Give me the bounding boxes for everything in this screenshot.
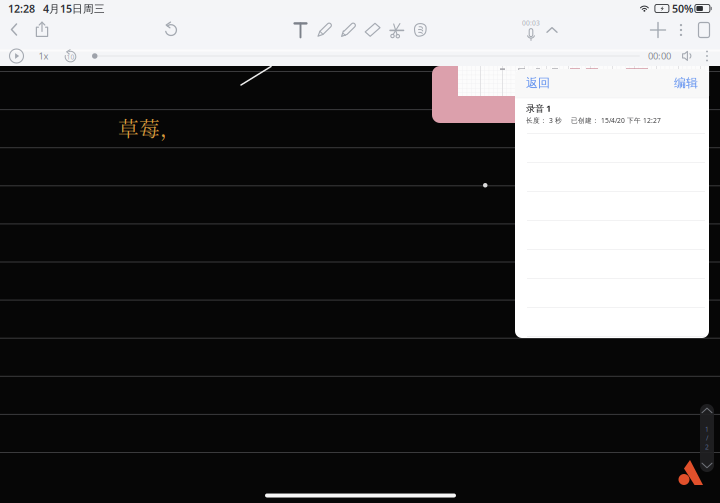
staticText: 2 [705,442,709,451]
button[interactable]: Play [3,47,30,65]
button[interactable]: Expand recording [542,14,562,46]
button[interactable]: 1x [30,47,57,65]
button[interactable]: 编辑 [666,69,709,97]
button[interactable]: 返回 [515,69,558,97]
button[interactable]: Eraser [364,14,381,46]
button[interactable]: Audio options [699,47,715,65]
staticText: 草莓， [118,113,181,143]
button[interactable]: Back [3,13,25,45]
staticText: 录音 1 [526,102,551,114]
button[interactable]: Volume [677,47,699,65]
staticText: 返回 [526,76,550,90]
staticText: 编辑 [674,76,698,90]
staticText: 50% [672,1,693,16]
staticText: / [706,434,708,442]
staticText: 00:00 [648,50,671,62]
staticText: 已创建： 15/4/20 下午 12:27 [571,116,661,125]
button[interactable]: More [671,14,691,46]
staticText: 1 [705,425,709,434]
button[interactable]: Pages [693,14,715,46]
button[interactable]: Recording [518,14,544,46]
button[interactable]: Hand [412,14,429,46]
button[interactable]: Add [646,14,670,46]
staticText: 长度： 3 秒 [526,116,562,125]
button[interactable]: Page 1 of 2 [700,404,714,472]
button[interactable]: Pen [316,14,333,46]
staticText: 00:03 [522,19,540,27]
button[interactable]: Share [29,13,55,45]
button[interactable]: Lasso [388,14,405,46]
staticText: 12:28 [8,1,35,16]
button[interactable]: Highlighter [340,14,357,46]
staticText: 1x [38,50,48,62]
button[interactable]: Undo [158,13,184,45]
staticText: 10 [66,53,74,61]
button[interactable]: Text tool [292,14,309,46]
staticText: 4月15日周三 [43,1,105,16]
button[interactable]: Rewind 10 seconds [57,47,84,65]
